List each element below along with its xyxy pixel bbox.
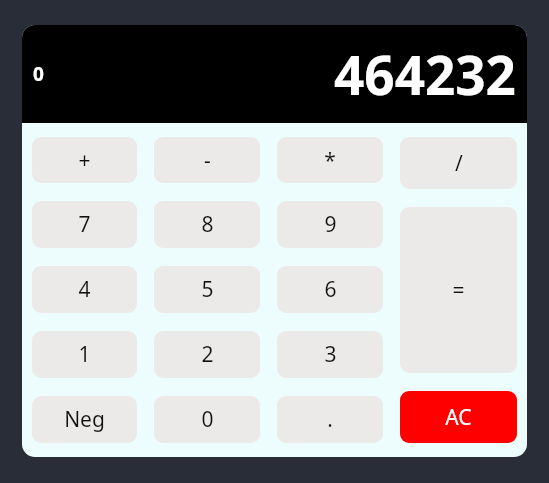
button[interactable]: 9 (277, 201, 383, 248)
button[interactable]: 2 (154, 331, 260, 378)
staticText: 0 (33, 61, 44, 87)
button[interactable]: 0 (154, 396, 260, 443)
staticText: / (455, 149, 463, 178)
staticText: - (204, 146, 211, 175)
button[interactable]: - (154, 137, 260, 183)
staticText: * (324, 146, 336, 175)
button[interactable]: 8 (154, 201, 260, 248)
button[interactable]: + (32, 137, 137, 183)
button[interactable]: AC (400, 391, 517, 443)
button[interactable]: * (277, 137, 383, 183)
staticText: AC (445, 403, 472, 432)
staticText: Neg (64, 405, 105, 434)
staticText: = (452, 276, 465, 305)
staticText: 8 (201, 210, 214, 239)
staticText: 3 (324, 340, 337, 369)
button[interactable]: 6 (277, 266, 383, 313)
staticText: 7 (78, 210, 91, 239)
staticText: 9 (324, 210, 337, 239)
button[interactable]: 4 (32, 266, 137, 313)
staticText: 6 (324, 275, 337, 304)
staticText: 464232 (334, 38, 516, 110)
staticText: 5 (201, 275, 214, 304)
button[interactable]: / (400, 137, 517, 189)
staticText: . (327, 405, 333, 434)
button[interactable]: 5 (154, 266, 260, 313)
staticText: 1 (78, 340, 91, 369)
staticText: 2 (201, 340, 214, 369)
button[interactable]: = (400, 207, 517, 373)
button[interactable]: 3 (277, 331, 383, 378)
button[interactable]: Neg (32, 396, 137, 443)
staticText: 4 (78, 275, 91, 304)
staticText: 0 (201, 405, 214, 434)
button[interactable]: . (277, 396, 383, 443)
button[interactable]: 7 (32, 201, 137, 248)
button[interactable]: 1 (32, 331, 137, 378)
staticText: + (78, 146, 91, 175)
